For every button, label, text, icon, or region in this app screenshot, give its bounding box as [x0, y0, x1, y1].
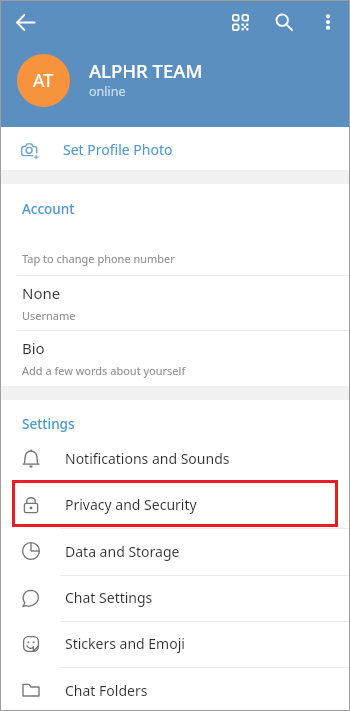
- staticText: Username: [22, 308, 76, 323]
- staticText: Notifications and Sounds: [65, 449, 230, 468]
- button[interactable]: More options: [309, 3, 347, 41]
- button[interactable]: [0, 436, 350, 482]
- staticText: Set Profile Photo: [63, 140, 173, 159]
- button[interactable]: Back: [6, 3, 44, 41]
- staticText: Stickers and Emoji: [65, 634, 185, 653]
- staticText: online: [89, 83, 126, 100]
- staticText: Chat Folders: [65, 681, 148, 700]
- staticText: Chat Settings: [65, 588, 153, 607]
- staticText: Tap to change phone number: [22, 251, 175, 266]
- button[interactable]: [0, 482, 350, 528]
- staticText: ALPHR TEAM: [89, 58, 203, 83]
- button[interactable]: [0, 222, 350, 275]
- button[interactable]: [0, 528, 350, 574]
- button[interactable]: Search: [265, 3, 303, 41]
- button[interactable]: [0, 621, 350, 667]
- staticText: Privacy and Security: [65, 495, 197, 514]
- button[interactable]: Profile photo: [17, 54, 70, 107]
- staticText: Data and Storage: [65, 542, 180, 561]
- staticText: AT: [33, 68, 54, 93]
- staticText: Add a few words about yourself: [22, 363, 186, 378]
- button[interactable]: [0, 667, 350, 711]
- staticText: Account: [22, 200, 75, 218]
- staticText: None: [22, 283, 61, 303]
- button[interactable]: [0, 276, 350, 330]
- staticText: Bio: [22, 338, 45, 358]
- button[interactable]: QR code: [221, 3, 259, 41]
- staticText: Settings: [22, 415, 75, 433]
- button[interactable]: [0, 127, 350, 170]
- button[interactable]: [0, 331, 350, 386]
- button[interactable]: [0, 575, 350, 621]
